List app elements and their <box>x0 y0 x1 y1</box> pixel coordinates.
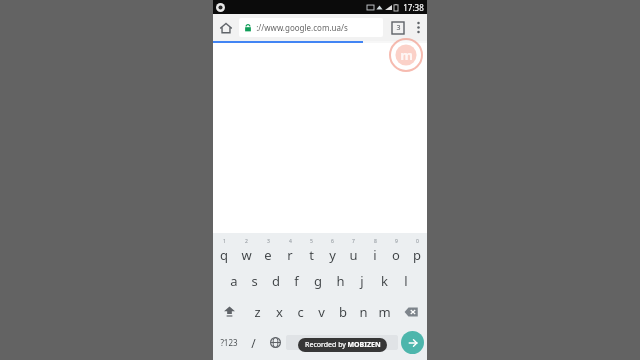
button[interactable]: l <box>395 266 417 296</box>
staticText: u <box>349 246 358 264</box>
staticText: g <box>314 272 322 290</box>
staticText: 8 <box>374 238 377 245</box>
staticText: j <box>360 272 364 290</box>
button[interactable]: s <box>244 266 265 296</box>
button[interactable]: 0 <box>406 236 427 266</box>
button[interactable]: v <box>311 296 332 327</box>
staticText: 7 <box>352 238 355 245</box>
button[interactable]: 7 <box>343 236 364 266</box>
staticText: w <box>241 246 252 264</box>
staticText: 9 <box>395 238 398 245</box>
button[interactable]: 2 <box>235 236 257 266</box>
staticText: y <box>329 246 336 264</box>
button[interactable]: d <box>265 266 286 296</box>
button[interactable]: m <box>374 296 395 327</box>
staticText: r <box>287 246 293 264</box>
button[interactable]: n <box>353 296 374 327</box>
button[interactable]: More options <box>409 14 427 41</box>
staticText: 17:38 <box>403 2 424 13</box>
staticText: c <box>297 303 304 321</box>
button[interactable]: 3 <box>257 236 279 266</box>
button[interactable]: ://www.google.com.ua/s <box>239 18 383 37</box>
staticText: d <box>272 272 280 290</box>
button[interactable]: a <box>223 266 244 296</box>
staticText: Recorded by <box>304 340 347 350</box>
staticText: a <box>230 272 238 290</box>
staticText: n <box>359 303 368 321</box>
button[interactable]: z <box>246 296 268 327</box>
staticText: p <box>413 246 421 264</box>
staticText: h <box>336 272 345 290</box>
button[interactable]: 9 <box>385 236 406 266</box>
staticText: e <box>264 246 272 264</box>
staticText: 5 <box>310 238 313 245</box>
staticText: 4 <box>289 238 292 245</box>
button[interactable]: c <box>290 296 311 327</box>
staticText: MOBIZEN <box>347 340 381 350</box>
staticText: t <box>309 246 314 264</box>
staticText: k <box>381 272 388 290</box>
staticText: / <box>251 335 256 351</box>
button[interactable]: f <box>286 266 307 296</box>
staticText: q <box>220 246 228 264</box>
button[interactable]: Shift <box>213 296 246 327</box>
button[interactable]: Change language <box>264 327 286 358</box>
button[interactable]: 4 <box>279 236 301 266</box>
button[interactable]: b <box>332 296 353 327</box>
button[interactable]: h <box>329 266 351 296</box>
button[interactable]: Backspace <box>395 296 427 327</box>
button[interactable]: / <box>242 327 264 358</box>
staticText: ?123 <box>220 337 238 348</box>
staticText: m <box>400 46 413 64</box>
button[interactable]: x <box>268 296 290 327</box>
staticText: i <box>373 246 377 264</box>
staticText: f <box>294 272 299 290</box>
staticText: ://www.google.com.ua/s <box>256 22 348 33</box>
button[interactable]: k <box>373 266 395 296</box>
staticText: b <box>339 303 347 321</box>
staticText: 3 <box>267 238 270 245</box>
button[interactable]: 1 <box>213 236 235 266</box>
button[interactable]: Open tabs, 3 <box>387 14 409 41</box>
button[interactable]: Go <box>401 331 424 354</box>
button[interactable]: g <box>307 266 329 296</box>
button[interactable]: ?123 <box>216 327 242 358</box>
staticText: x <box>276 303 283 321</box>
button[interactable]: 8 <box>364 236 385 266</box>
staticText: 0 <box>416 238 419 245</box>
staticText: l <box>404 272 408 290</box>
staticText: o <box>392 246 400 264</box>
staticText: v <box>318 303 325 321</box>
staticText: QWERTY <box>330 339 355 347</box>
staticText: 1 <box>223 238 226 245</box>
staticText: 3 <box>396 23 401 33</box>
button[interactable]: 6 <box>322 236 343 266</box>
staticText: 2 <box>245 238 248 245</box>
button[interactable]: 5 <box>301 236 322 266</box>
button[interactable]: j <box>351 266 373 296</box>
button[interactable]: Home <box>213 14 239 41</box>
staticText: s <box>251 272 258 290</box>
staticText: 6 <box>331 238 334 245</box>
staticText: m <box>378 303 391 321</box>
staticText: z <box>254 303 261 321</box>
button[interactable]: Space <box>286 335 398 350</box>
